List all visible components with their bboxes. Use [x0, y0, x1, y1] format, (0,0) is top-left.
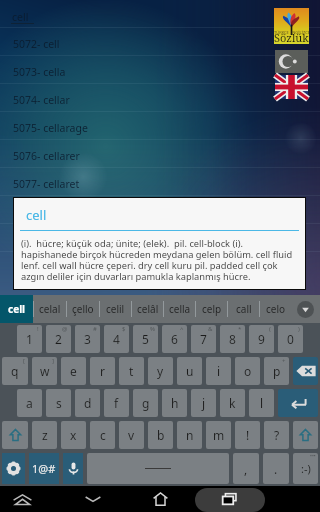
staticText: çello: [72, 302, 94, 316]
button[interactable]: l: [249, 389, 274, 417]
button[interactable]: cell: [0, 0, 320, 28]
button[interactable]: t: [119, 357, 144, 385]
button[interactable]: 5: [133, 325, 158, 353]
button[interactable]: 5075- cellarage: [0, 112, 320, 140]
button[interactable]: g: [133, 389, 158, 417]
button[interactable]: y: [148, 357, 173, 385]
button[interactable]: 7: [191, 325, 216, 353]
staticText: t: [129, 363, 134, 379]
button[interactable]: q: [2, 357, 28, 385]
button[interactable]: Shift: [293, 421, 318, 449]
button[interactable]: 8: [220, 325, 245, 353]
button[interactable]: .: [263, 453, 289, 484]
button[interactable]: x: [61, 421, 86, 449]
button[interactable]: 5073- cella: [0, 56, 320, 84]
button[interactable]: celil: [100, 295, 131, 323]
button[interactable]: k: [220, 389, 245, 417]
button[interactable]: d: [75, 389, 100, 417]
staticText: 4: [113, 331, 120, 347]
button[interactable]: 5074- cellar: [0, 84, 320, 112]
staticText: ?: [274, 427, 280, 443]
button[interactable]: 5077- cellaret: [0, 168, 320, 196]
staticText: o: [244, 363, 252, 379]
button[interactable]: 4: [104, 325, 129, 353]
button[interactable]: 5076- cellarer: [0, 140, 320, 168]
button[interactable]: r: [90, 357, 115, 385]
button[interactable]: celal: [34, 295, 66, 323]
staticText: e: [70, 363, 77, 379]
staticText: cell: [8, 302, 26, 316]
button[interactable]: u: [177, 357, 202, 385]
button[interactable]: celo: [260, 295, 291, 323]
button[interactable]: a: [17, 389, 42, 417]
staticText: 5076- cellarer: [13, 149, 80, 163]
button[interactable]: celâl: [132, 295, 163, 323]
button[interactable]: b: [148, 421, 173, 449]
button[interactable]: i: [206, 357, 231, 385]
staticText: 5072- cell: [13, 37, 60, 51]
button[interactable]: e: [61, 357, 86, 385]
button[interactable]: 5072- cell: [0, 28, 320, 56]
button[interactable]: ?: [264, 421, 289, 449]
button[interactable]: 0: [278, 325, 303, 353]
button[interactable]: j: [191, 389, 216, 417]
staticText: call: [236, 302, 252, 316]
button[interactable]: 1: [17, 325, 42, 353]
staticText: &: [208, 325, 213, 333]
staticText: 8: [229, 331, 236, 347]
button[interactable]: Backspace: [293, 357, 318, 385]
button[interactable]: Voice input: [63, 453, 83, 484]
staticText: s: [56, 395, 62, 411]
staticText: celâl: [137, 302, 159, 316]
staticText: w: [40, 363, 50, 379]
button[interactable]: Recents: [215, 490, 243, 508]
button[interactable]: 1@#: [29, 453, 59, 484]
button[interactable]: Sozluk app: [274, 8, 309, 44]
staticText: !: [37, 325, 39, 333]
button[interactable]: Home: [146, 490, 174, 508]
staticText: @: [62, 325, 68, 333]
staticText: 5: [142, 331, 149, 347]
button[interactable]: Space: [87, 453, 229, 484]
button[interactable]: 3: [75, 325, 100, 353]
staticText: TÜRKÇE İNGİLİZCE: [274, 30, 309, 35]
button[interactable]: call: [228, 295, 259, 323]
button[interactable]: cella: [164, 295, 195, 323]
button[interactable]: 9: [249, 325, 274, 353]
button[interactable]: Turkish: [275, 50, 308, 73]
button[interactable]: v: [119, 421, 144, 449]
button[interactable]: s: [46, 389, 71, 417]
staticText: 5075- cellarage: [13, 121, 88, 135]
button[interactable]: English: [275, 75, 308, 99]
button[interactable]: Back: [8, 491, 37, 507]
button[interactable]: Shift: [2, 421, 28, 449]
button[interactable]: z: [32, 421, 57, 449]
button[interactable]: 5078- cellist: [0, 196, 320, 224]
staticText: f: [114, 395, 119, 411]
button[interactable]: More suggestions: [291, 295, 320, 323]
button[interactable]: cell: [0, 295, 33, 323]
button[interactable]: !: [235, 421, 260, 449]
button[interactable]: celp: [196, 295, 227, 323]
button[interactable]: ,: [233, 453, 259, 484]
button[interactable]: Enter: [278, 389, 318, 417]
button[interactable]: w: [32, 357, 57, 385]
button[interactable]: Hide keyboard: [78, 491, 107, 507]
button[interactable]: o: [235, 357, 260, 385]
button[interactable]: c: [90, 421, 115, 449]
button[interactable]: f: [104, 389, 129, 417]
button[interactable]: çello: [67, 295, 99, 323]
button[interactable]: Settings: [2, 453, 25, 484]
button[interactable]: p: [264, 357, 289, 385]
button[interactable]: 2: [46, 325, 71, 353]
button[interactable]: 6: [162, 325, 187, 353]
staticText: 5073- cella: [13, 65, 66, 79]
button[interactable]: h: [162, 389, 187, 417]
button[interactable]: 5079- cellophane: [0, 224, 320, 252]
staticText: $: [122, 325, 126, 333]
button[interactable]: n: [177, 421, 202, 449]
button[interactable]: :-): [293, 453, 318, 484]
staticText: i: [217, 363, 221, 379]
button[interactable]: m: [206, 421, 231, 449]
staticText: celil: [106, 302, 125, 316]
